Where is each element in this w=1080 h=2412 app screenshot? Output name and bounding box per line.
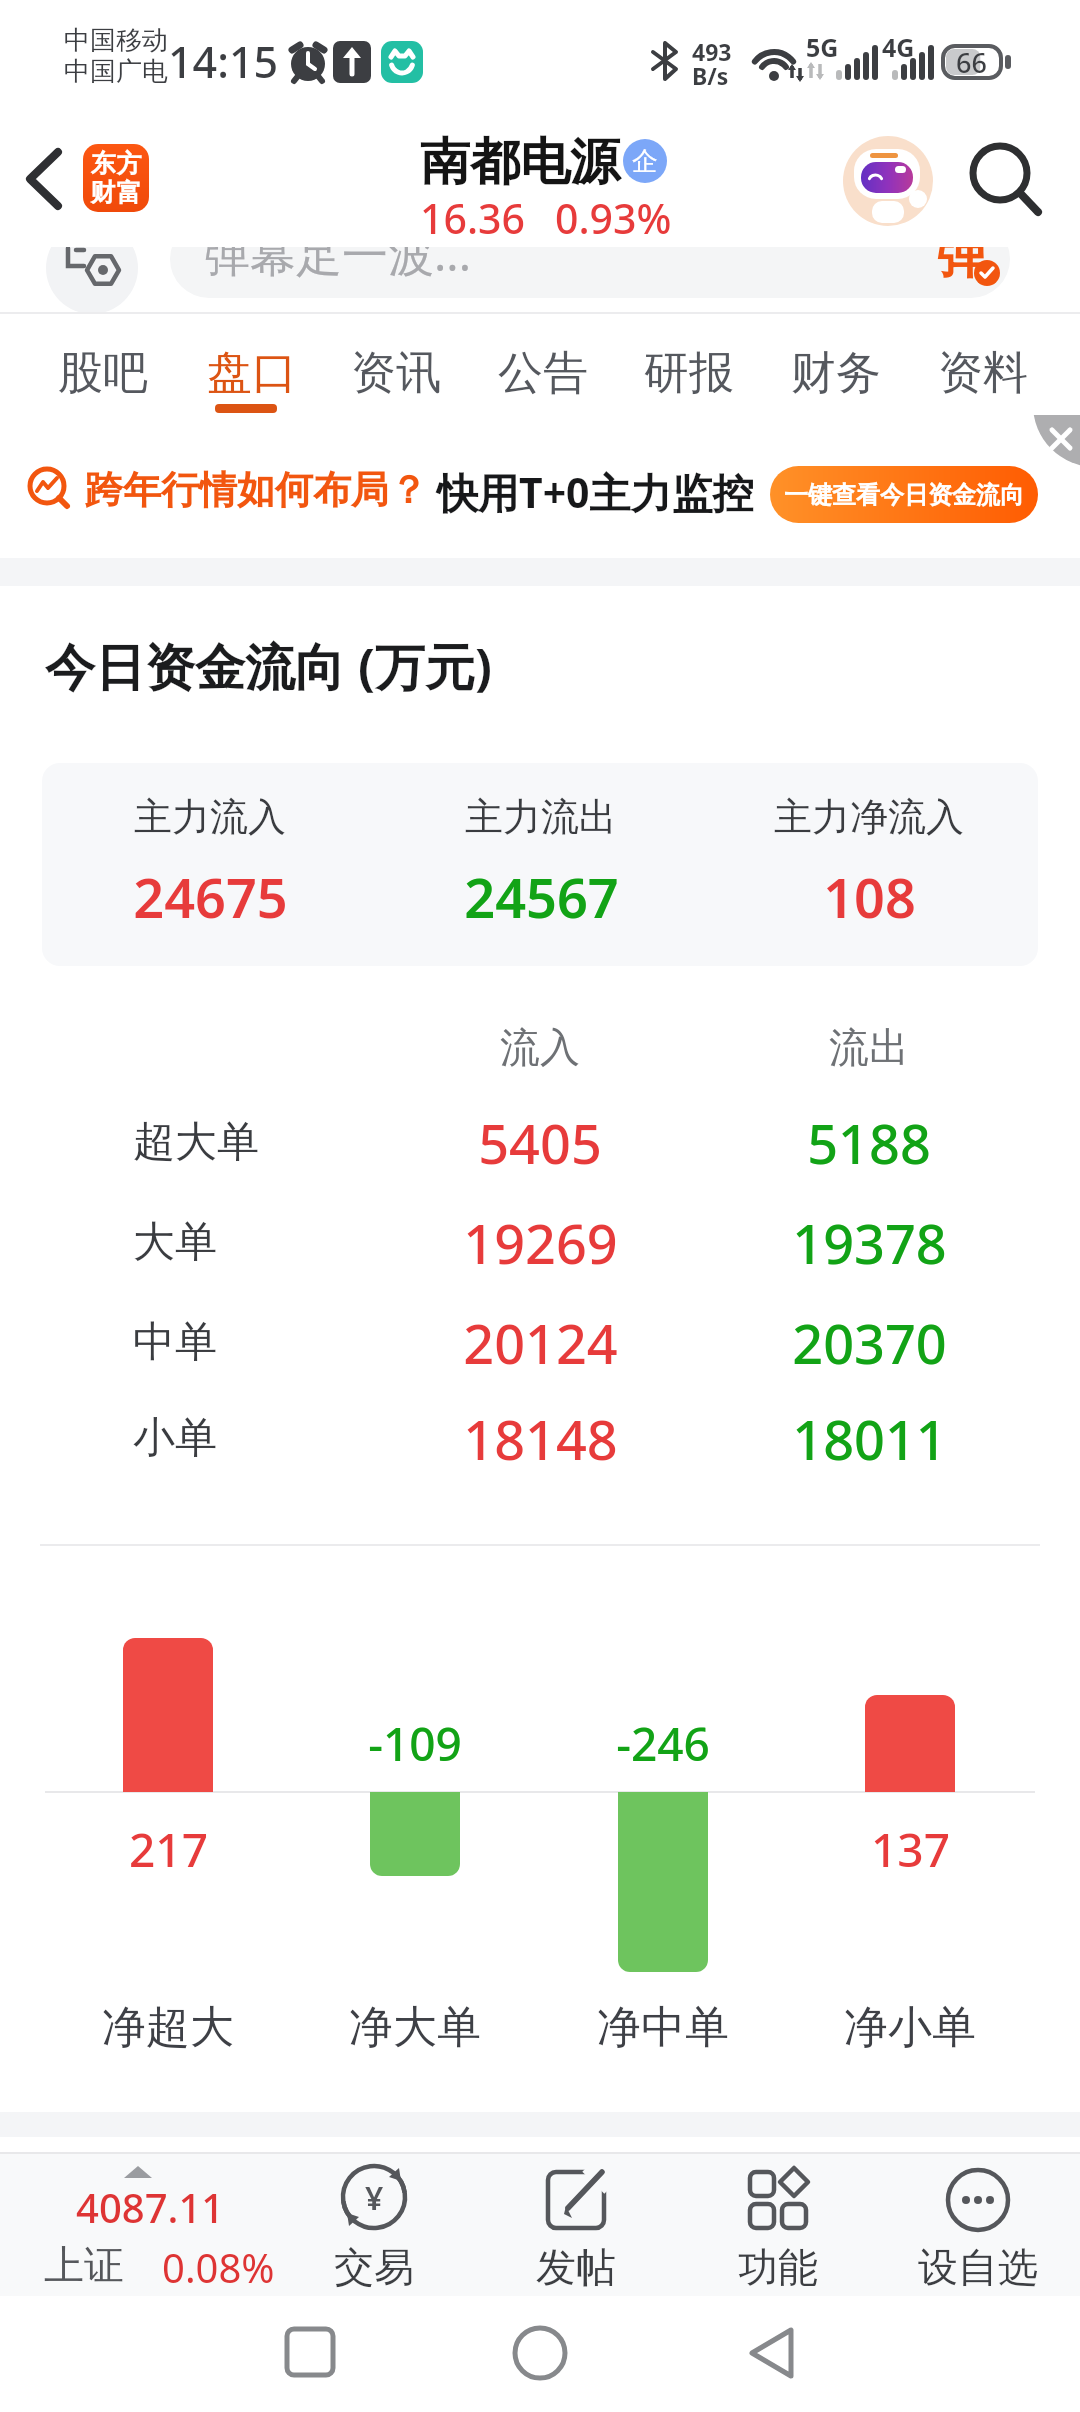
button[interactable]: 东方 财富 — [83, 144, 149, 212]
staticText: 设自选 — [918, 2242, 1038, 2292]
staticText: 18011 — [792, 1402, 947, 1476]
staticText: -246 — [616, 1712, 710, 1775]
staticText: 交易 — [334, 2242, 414, 2292]
staticText: 盘口 — [207, 345, 297, 402]
button[interactable] — [170, 220, 1010, 298]
staticText: 18148 — [463, 1402, 618, 1476]
staticText: 发帖 — [536, 2242, 616, 2292]
staticText: 137 — [871, 1818, 950, 1881]
staticText: 5405 — [478, 1106, 602, 1180]
staticText: 4087.11 — [76, 2180, 225, 2234]
staticText: 0.93% — [555, 190, 672, 246]
button[interactable]: 股吧 — [41, 334, 165, 412]
staticText: 弹 — [936, 222, 988, 288]
staticText: -109 — [368, 1712, 462, 1775]
button[interactable]: 发帖 — [510, 2162, 642, 2292]
staticText: 净中单 — [597, 2000, 729, 2055]
staticText: 财务 — [791, 345, 881, 402]
staticText: 功能 — [738, 2242, 818, 2292]
staticText: 中单 — [133, 1316, 217, 1369]
button[interactable]: 跨年行情如何布局？ — [0, 415, 1080, 558]
button[interactable]: 资料 — [921, 334, 1045, 412]
staticText: 上证 — [44, 2240, 124, 2290]
staticText: 493 B/s — [692, 36, 732, 92]
staticText: 跨年行情如何布局？ — [85, 466, 427, 514]
staticText: ¥ — [365, 2176, 384, 2220]
button[interactable] — [1005, 415, 1080, 490]
staticText: 0.08% — [162, 2240, 275, 2294]
staticText: 净超大 — [102, 2000, 234, 2055]
staticText: 主力流出 — [465, 793, 617, 841]
staticText: 研报 — [644, 345, 734, 402]
staticText: 流出 — [829, 1022, 909, 1072]
staticText: 弹幕足一波... — [204, 222, 471, 285]
staticText: 资料 — [938, 345, 1028, 402]
button[interactable] — [475, 2310, 605, 2400]
button[interactable]: 研报 — [627, 334, 751, 412]
staticText: 快用T+0主力监控 — [437, 464, 754, 520]
button[interactable] — [245, 2310, 375, 2400]
staticText: 24675 — [133, 860, 288, 934]
button[interactable]: ¥ — [308, 2162, 440, 2292]
staticText: 16.36 — [420, 190, 525, 246]
staticText: 大单 — [133, 1216, 217, 1269]
staticText: 小单 — [133, 1412, 217, 1465]
button[interactable] — [962, 136, 1050, 224]
staticText: 净小单 — [844, 2000, 976, 2055]
staticText: 主力净流入 — [774, 793, 964, 841]
button[interactable]: 设自选 — [912, 2162, 1044, 2292]
staticText: 超大单 — [133, 1116, 259, 1169]
button[interactable]: 公告 — [481, 334, 605, 412]
staticText: 14:15 — [168, 32, 279, 91]
staticText: 20370 — [792, 1306, 947, 1380]
staticText: 公告 — [498, 345, 588, 402]
staticText: 一键查看今日资金流向 — [784, 480, 1024, 510]
staticText: 19378 — [792, 1206, 947, 1280]
button[interactable]: 功能 — [712, 2162, 844, 2292]
staticText: 南都电源 — [420, 131, 620, 194]
staticText: 中国移动 中国广电 — [64, 24, 168, 88]
staticText: 流入 — [500, 1022, 580, 1072]
button[interactable] — [706, 2310, 836, 2400]
staticText: 5188 — [807, 1106, 931, 1180]
staticText: 主力流入 — [134, 793, 286, 841]
button[interactable]: 4087.11 — [20, 2156, 290, 2294]
staticText: 东方 财富 — [90, 148, 142, 208]
button[interactable]: 一键查看今日资金流向 — [770, 466, 1038, 523]
button[interactable]: 盘口 — [190, 334, 314, 412]
staticText: 5G — [806, 30, 839, 64]
staticText: 4G — [882, 30, 915, 64]
staticText: 108 — [823, 860, 916, 934]
button[interactable] — [842, 135, 934, 227]
staticText: 今日资金流向 (万元) — [45, 632, 492, 700]
staticText: 66 — [956, 44, 987, 81]
staticText: 净大单 — [349, 2000, 481, 2055]
staticText: 企 — [632, 145, 658, 178]
button[interactable]: 资讯 — [334, 334, 458, 412]
button[interactable] — [14, 140, 78, 220]
staticText: 19269 — [463, 1206, 618, 1280]
button[interactable]: 财务 — [774, 334, 898, 412]
staticText: 20124 — [463, 1306, 618, 1380]
staticText: 24567 — [464, 860, 619, 934]
staticText: 资讯 — [351, 345, 441, 402]
staticText: 217 — [129, 1818, 208, 1881]
staticText: 股吧 — [58, 345, 148, 402]
